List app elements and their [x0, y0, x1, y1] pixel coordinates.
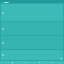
button[interactable]: Sent [37, 61, 41, 64]
button[interactable] [1, 22, 63, 35]
button[interactable]: Search [59, 1, 61, 3]
button[interactable]: Starred [23, 61, 27, 64]
button[interactable] [1, 50, 63, 60]
button[interactable]: Home [10, 61, 14, 64]
button[interactable]: Open navigation menu [1, 1, 3, 3]
button[interactable]: Settings [50, 61, 54, 64]
button[interactable]: Compose [60, 57, 63, 60]
button[interactable] [1, 4, 63, 21]
button[interactable] [1, 36, 63, 49]
staticText: Inbox [4, 1, 9, 3]
